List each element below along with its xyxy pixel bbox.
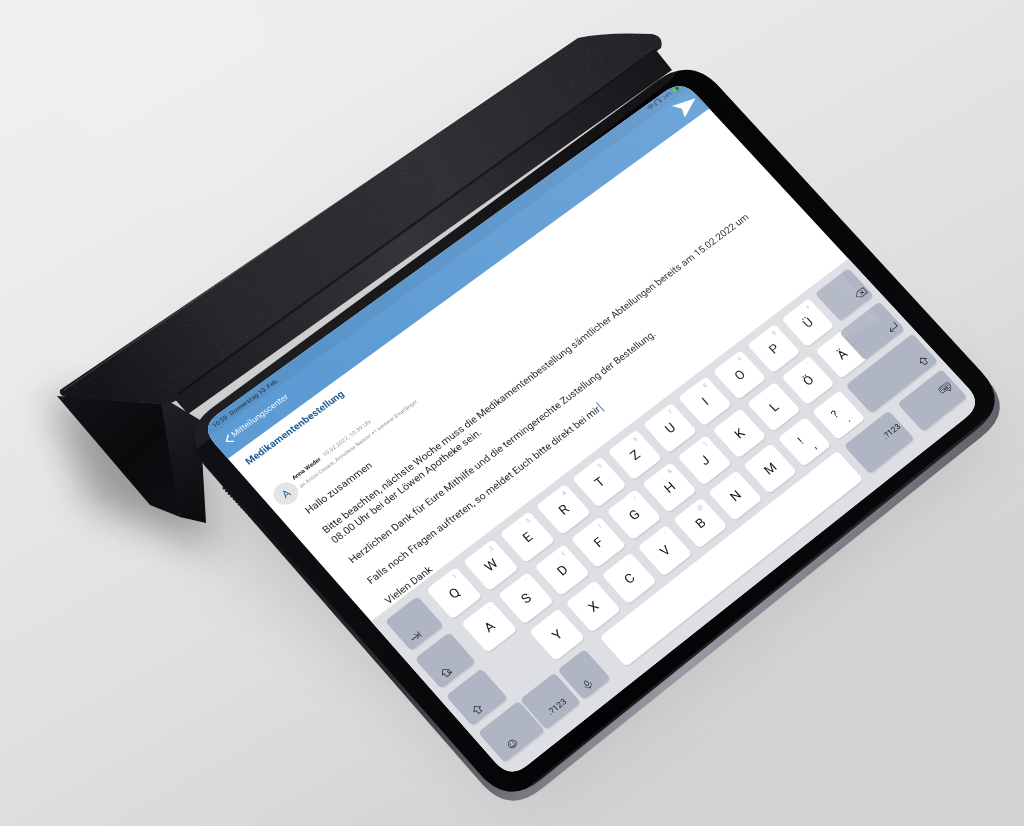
button[interactable]: Tablet showing the Mitteilungscenter mes… xyxy=(0,0,1024,826)
